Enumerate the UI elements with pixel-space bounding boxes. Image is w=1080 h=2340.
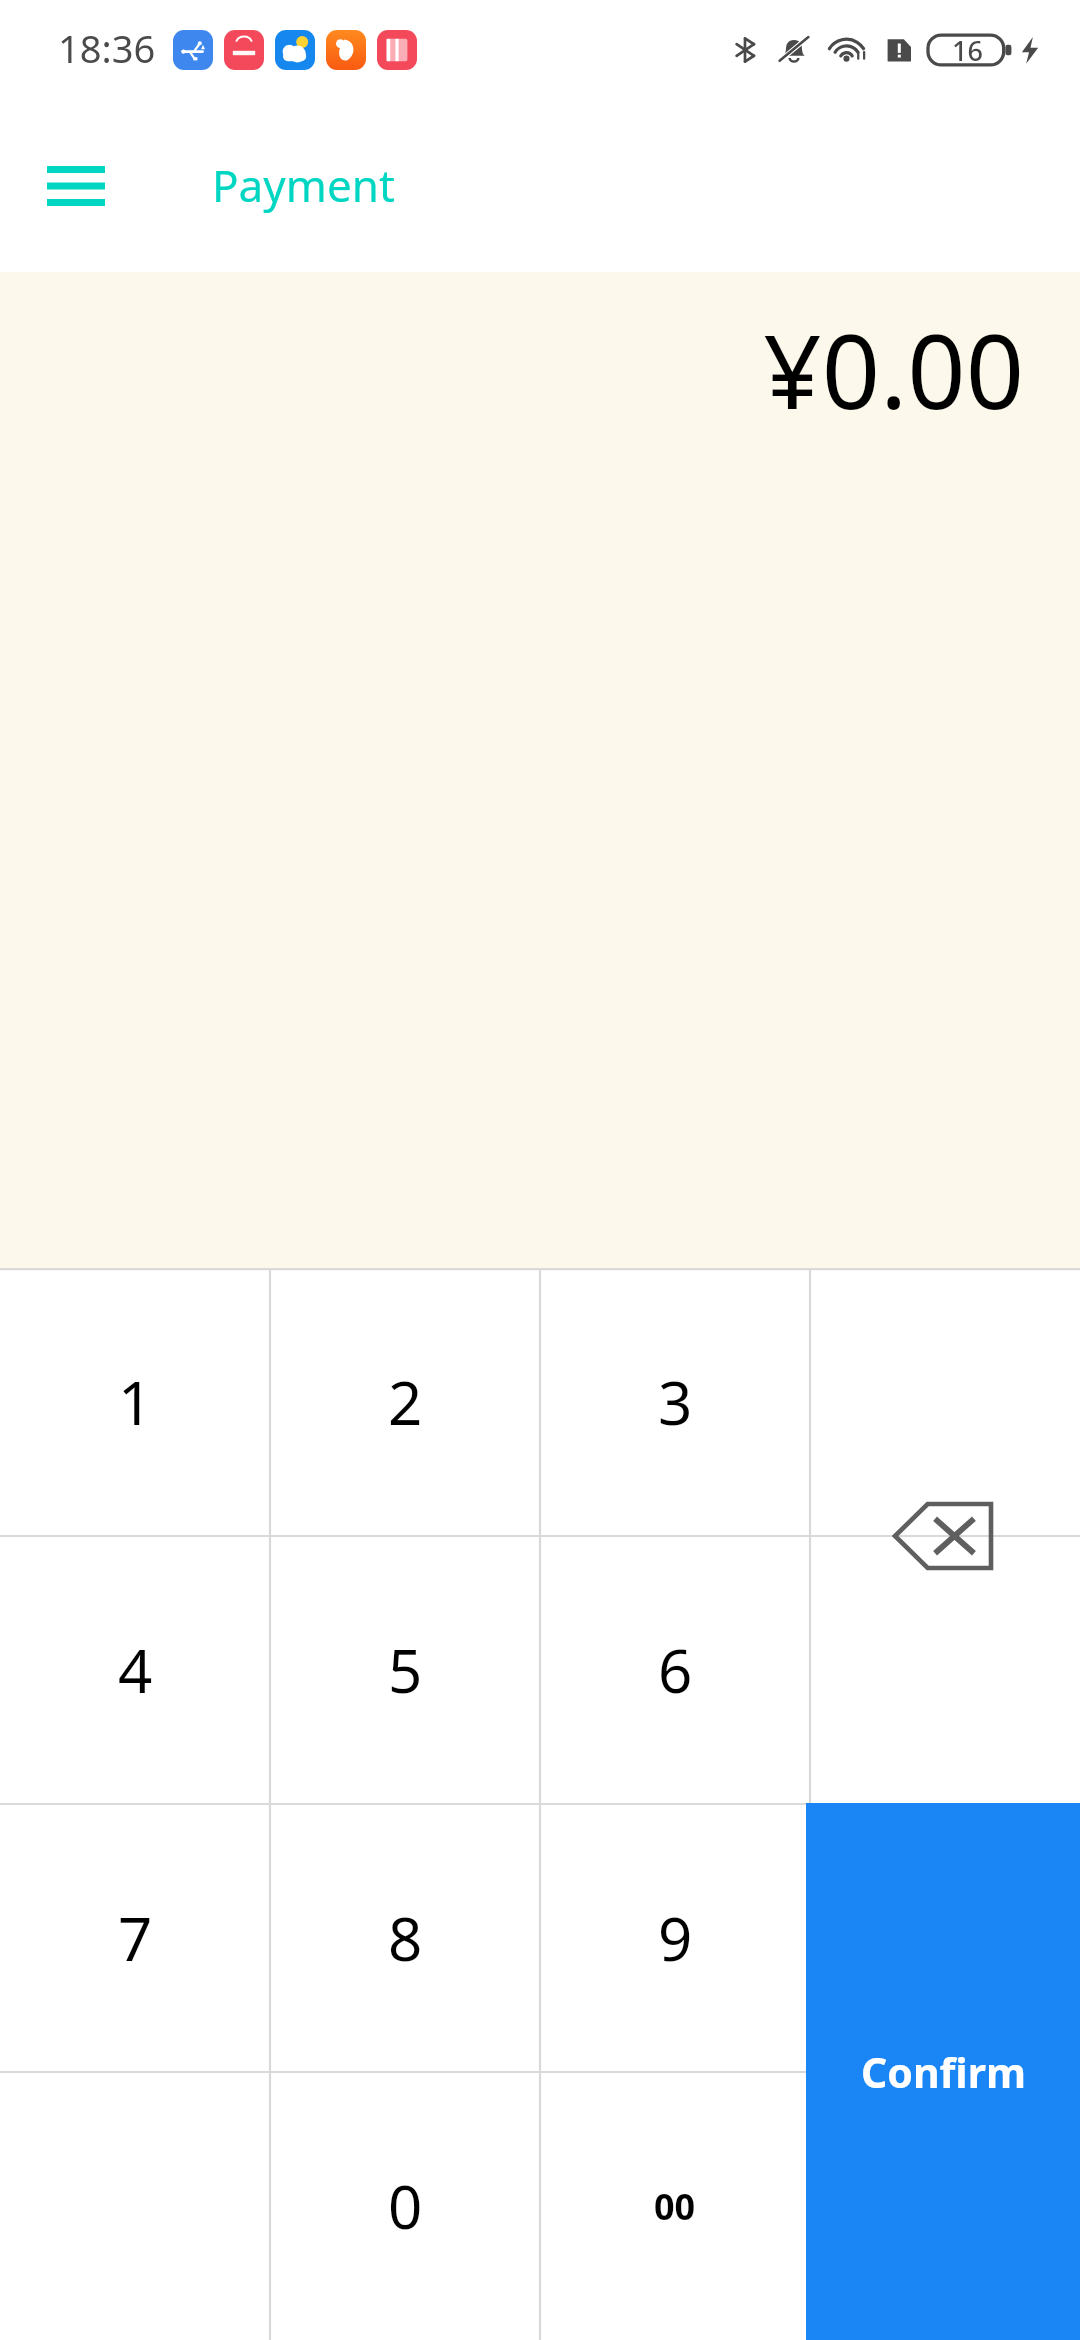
button[interactable]: 0 bbox=[270, 2072, 540, 2340]
button[interactable]: Backspace bbox=[806, 1268, 1080, 1804]
staticText: 6 bbox=[658, 1629, 693, 1711]
button[interactable]: 3 bbox=[540, 1268, 810, 1536]
button[interactable]: 2 bbox=[270, 1268, 540, 1536]
staticText: 18:36 bbox=[58, 22, 156, 74]
staticText: 9 bbox=[658, 1897, 693, 1979]
staticText: 16 bbox=[952, 32, 983, 69]
button[interactable]: 4 bbox=[0, 1536, 270, 1804]
staticText: 00 bbox=[654, 2182, 696, 2231]
button[interactable]: 1 bbox=[0, 1268, 270, 1536]
staticText: 8 bbox=[388, 1897, 423, 1979]
staticText: ¥0.00 bbox=[763, 300, 1024, 439]
button[interactable]: 00 bbox=[540, 2072, 810, 2340]
button[interactable]: 7 bbox=[0, 1804, 270, 2072]
button[interactable]: 8 bbox=[270, 1804, 540, 2072]
staticText: 1 bbox=[118, 1361, 153, 1443]
staticText: 7 bbox=[118, 1897, 153, 1979]
staticText: Confirm bbox=[861, 2044, 1026, 2100]
staticText: 5 bbox=[388, 1629, 423, 1711]
staticText: 2 bbox=[388, 1361, 423, 1443]
staticText: 3 bbox=[658, 1361, 693, 1443]
staticText: 0 bbox=[388, 2165, 423, 2247]
staticText: Payment bbox=[212, 155, 395, 215]
button[interactable]: 5 bbox=[270, 1536, 540, 1804]
button[interactable]: 6 bbox=[540, 1536, 810, 1804]
button[interactable]: Confirm bbox=[806, 1803, 1080, 2340]
button[interactable]: Open navigation menu bbox=[20, 130, 132, 242]
staticText: 4 bbox=[118, 1629, 153, 1711]
button[interactable]: 9 bbox=[540, 1804, 810, 2072]
